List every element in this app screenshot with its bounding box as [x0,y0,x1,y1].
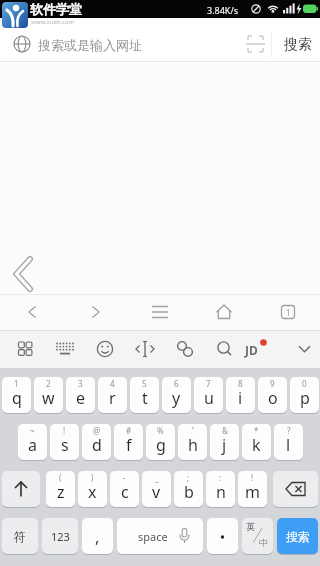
button[interactable]: ! [50,424,79,461]
button[interactable]: # [114,424,143,461]
staticText: j [222,434,227,456]
staticText: a [28,434,37,456]
button[interactable] [200,296,248,328]
button[interactable] [165,332,205,366]
button[interactable]: - [110,471,139,508]
staticText: x [88,481,97,503]
staticText: JD [245,342,258,358]
button[interactable]: 搜索 [277,518,318,555]
staticText: ' [192,425,194,436]
staticText: 符 [14,529,26,544]
button[interactable]: : [206,471,235,508]
staticText: * [254,425,259,436]
button[interactable] [85,332,125,366]
staticText: 2 [46,378,51,389]
staticText: 4 [110,378,115,389]
button[interactable]: @ [82,424,111,461]
button[interactable] [136,296,184,328]
button[interactable]: space [117,518,203,555]
staticText: o [268,387,278,409]
staticText: s [61,434,69,456]
button[interactable]: 123 [42,518,78,555]
button[interactable]: 4 [98,377,127,414]
button[interactable]: 英 [242,518,273,555]
staticText: 搜索 [286,529,310,544]
staticText: @ [93,425,101,436]
button[interactable] [8,296,56,328]
staticText: m [245,481,260,503]
staticText: y [172,387,181,409]
button[interactable] [5,332,45,366]
button[interactable] [207,518,238,555]
button[interactable] [205,332,245,366]
staticText: % [157,425,164,436]
staticText: ) [91,472,94,483]
staticText: space [138,529,168,544]
staticText: c [121,481,129,503]
staticText: 5 [142,378,147,389]
staticText: l [286,434,291,456]
staticText: 123 [51,529,70,544]
staticText: i [238,387,243,409]
button[interactable] [125,332,165,366]
button[interactable]: 6 [162,377,191,414]
button[interactable] [245,332,285,366]
staticText: ! [63,425,66,436]
button[interactable]: 5 [130,377,159,414]
button[interactable]: ~ [18,424,47,461]
button[interactable]: % [146,424,175,461]
button[interactable]: 0 [290,377,319,414]
button[interactable] [2,471,40,508]
staticText: 1 [286,307,291,318]
staticText: k [252,434,261,456]
staticText: 搜索 [284,36,312,54]
button[interactable]: 2 [34,377,63,414]
button[interactable]: & [210,424,239,461]
button[interactable]: 搜索或是输入网址 [8,26,238,56]
staticText: 1 [14,378,19,389]
staticText: w [42,387,55,409]
button[interactable] [285,332,320,366]
button[interactable]: ! [238,471,267,508]
button[interactable]: * [242,424,271,461]
button[interactable] [72,296,120,328]
button[interactable] [45,332,85,366]
staticText: h [188,434,198,456]
staticText: 英 [246,521,255,532]
button[interactable] [264,296,312,328]
staticText: 6 [174,378,179,389]
button[interactable]: ) [78,471,107,508]
button[interactable]: ( [46,471,75,508]
button[interactable]: ? [274,424,303,461]
button[interactable]: 7 [194,377,223,414]
button[interactable] [246,36,265,52]
staticText: b [184,481,194,503]
staticText: 软件学堂 [30,1,82,17]
button[interactable]: ; [174,471,203,508]
button[interactable] [273,471,318,508]
staticText: v [152,481,161,503]
staticText: www.xueit.com [31,18,75,26]
staticText: ; [187,472,190,483]
staticText: ~ [30,425,35,436]
button[interactable]: 9 [258,377,287,414]
button[interactable]: ' [178,424,207,461]
button[interactable]: 搜索 [276,27,320,63]
button[interactable]: _ [142,471,171,508]
button[interactable]: 符 [2,518,38,555]
staticText: : [219,472,222,483]
button[interactable]: 8 [226,377,255,414]
staticText: r [109,387,116,409]
staticText: d [92,434,102,456]
staticText: q [12,387,22,409]
staticText: 搜索或是输入网址 [38,37,142,53]
button[interactable]: , [82,518,113,555]
button[interactable]: 3 [66,377,95,414]
staticText: , [95,526,100,548]
button[interactable] [10,255,38,293]
staticText: f [126,434,132,456]
button[interactable]: 1 [2,377,31,414]
staticText: ? [287,425,291,436]
staticText: 3.84K/s [207,4,239,16]
staticText: & [222,425,228,436]
